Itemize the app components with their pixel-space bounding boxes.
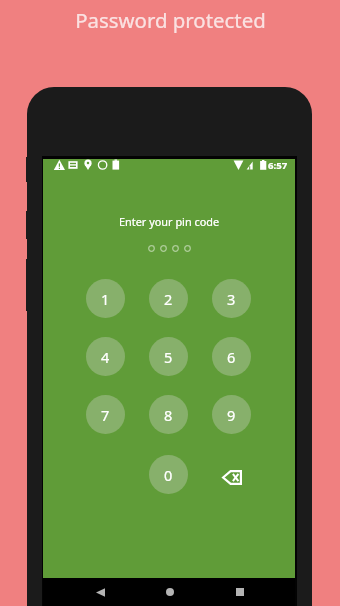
button[interactable]: 7 (86, 395, 125, 434)
button[interactable]: 3 (212, 279, 251, 318)
button[interactable]: 0 (149, 455, 188, 494)
button[interactable]: 9 (212, 395, 251, 434)
staticText: 5 (164, 347, 173, 367)
staticText: 4 (101, 347, 110, 367)
button[interactable]: Back (86, 578, 114, 606)
staticText: 1 (101, 289, 110, 309)
staticText: 0 (164, 465, 173, 485)
staticText: Enter your pin code (119, 214, 220, 229)
button[interactable]: 5 (149, 337, 188, 376)
button[interactable]: 6 (212, 337, 251, 376)
button[interactable]: Backspace (212, 455, 251, 494)
staticText: 3 (227, 289, 236, 309)
staticText: 9 (227, 405, 236, 425)
button[interactable]: 4 (86, 337, 125, 376)
button[interactable]: 1 (86, 279, 125, 318)
staticText: 6 (227, 347, 236, 367)
staticText: 8 (164, 405, 173, 425)
button[interactable]: 2 (149, 279, 188, 318)
staticText: Password protected (75, 6, 266, 34)
staticText: 7 (101, 405, 110, 425)
staticText: 2 (164, 289, 173, 309)
button[interactable]: Recents (226, 578, 254, 606)
button[interactable]: Home (156, 578, 184, 606)
button[interactable]: 8 (149, 395, 188, 434)
staticText: 6:57 (268, 159, 288, 172)
